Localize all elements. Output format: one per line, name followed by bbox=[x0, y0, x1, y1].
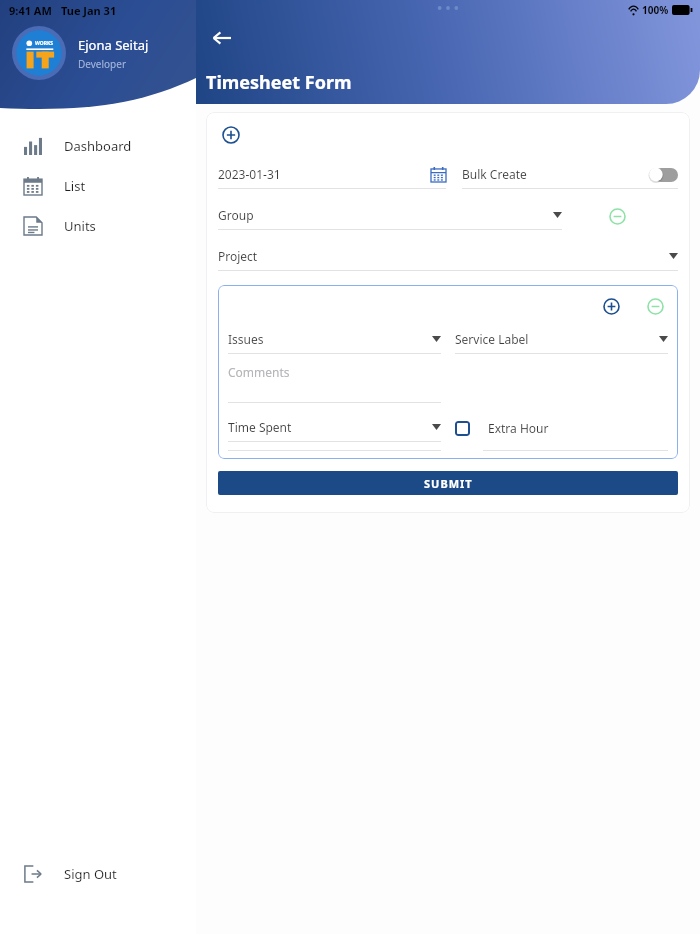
staticText: 100% bbox=[642, 3, 669, 17]
staticText: Units bbox=[64, 217, 96, 235]
button[interactable]: Extra Hour bbox=[455, 414, 668, 442]
staticText: Project bbox=[218, 248, 258, 264]
staticText: Extra Hour bbox=[488, 420, 549, 436]
button[interactable]: Bulk Create bbox=[462, 160, 678, 188]
button[interactable]: Back bbox=[202, 18, 242, 58]
staticText: 2023-01-31 bbox=[218, 166, 281, 182]
button[interactable]: Remove line bbox=[642, 293, 668, 319]
staticText: Comments bbox=[228, 364, 290, 380]
staticText: Sign Out bbox=[64, 865, 117, 883]
button[interactable]: Dashboard bbox=[0, 126, 196, 166]
staticText: Dashboard bbox=[64, 137, 132, 155]
staticText: Group bbox=[218, 207, 254, 223]
staticText: Time Spent bbox=[228, 419, 292, 435]
button[interactable]: Group bbox=[218, 201, 562, 229]
staticText: List bbox=[64, 177, 86, 195]
staticText: Developer bbox=[78, 57, 127, 71]
button[interactable]: Time Spent bbox=[228, 413, 441, 441]
button[interactable]: Units bbox=[0, 206, 196, 246]
staticText: Tue Jan 31 bbox=[61, 3, 117, 18]
button[interactable]: Issues bbox=[228, 325, 441, 353]
staticText: SUBMIT bbox=[424, 476, 473, 491]
staticText: WORKS bbox=[35, 40, 54, 47]
button[interactable]: Add line bbox=[598, 293, 624, 319]
staticText: Service Label bbox=[455, 331, 529, 347]
staticText: 9:41 AM bbox=[9, 3, 52, 18]
button[interactable]: 2023-01-31 bbox=[218, 160, 446, 188]
staticText: Ejona Seitaj bbox=[78, 36, 149, 54]
button[interactable]: Sign Out bbox=[0, 854, 196, 894]
button[interactable] bbox=[648, 167, 678, 182]
staticText: Bulk Create bbox=[462, 166, 527, 182]
button[interactable]: Service Label bbox=[455, 325, 668, 353]
staticText: Timesheet Form bbox=[206, 70, 352, 95]
button[interactable]: SUBMIT bbox=[218, 471, 678, 495]
button[interactable]: Project bbox=[218, 242, 678, 270]
button[interactable]: Remove group bbox=[604, 203, 630, 229]
button[interactable]: Comments bbox=[228, 364, 441, 402]
button[interactable]: Add entry bbox=[218, 122, 244, 148]
button[interactable]: List bbox=[0, 166, 196, 206]
staticText: Issues bbox=[228, 331, 264, 347]
